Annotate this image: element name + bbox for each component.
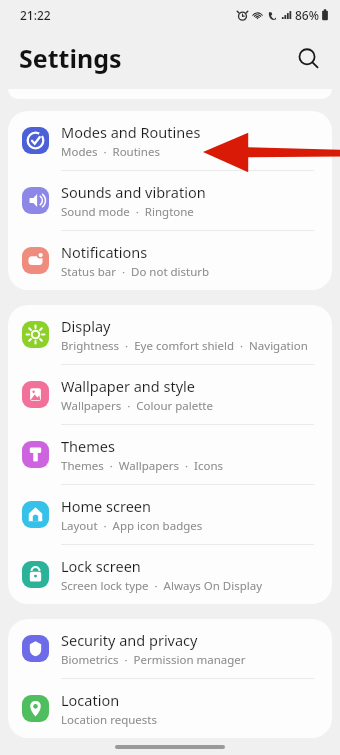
button[interactable]: Modes and Routines	[8, 111, 332, 170]
staticText: Modes · Routines	[61, 144, 160, 160]
button[interactable]: Display	[8, 305, 332, 364]
button[interactable]: Themes	[8, 425, 332, 484]
staticText: Home screen	[61, 496, 151, 516]
button[interactable]: Wallpaper and style	[8, 365, 332, 424]
staticText: Biometrics · Permission manager	[61, 652, 246, 668]
staticText: 21:22	[20, 7, 51, 23]
staticText: 86%	[295, 7, 319, 23]
button[interactable]: Notifications	[8, 231, 332, 290]
button[interactable]: Sounds and vibration	[8, 171, 332, 230]
staticText: Brightness · Eye comfort shield · Naviga…	[61, 338, 322, 354]
staticText: Display	[61, 316, 111, 336]
staticText: Modes and Routines	[61, 122, 201, 142]
button[interactable]: Location	[8, 679, 332, 738]
button[interactable]: Home screen	[8, 485, 332, 544]
staticText: Notifications	[61, 242, 148, 262]
button[interactable]: Search	[288, 38, 328, 78]
staticText: Status bar · Do not disturb	[61, 264, 210, 280]
staticText: Themes · Wallpapers · Icons	[61, 458, 223, 474]
staticText: Settings	[19, 41, 122, 75]
staticText: Screen lock type · Always On Display	[61, 578, 263, 594]
staticText: Security and privacy	[61, 630, 198, 650]
staticText: Sound mode · Ringtone	[61, 204, 194, 220]
staticText: Location	[61, 690, 120, 710]
staticText: Wallpaper and style	[61, 376, 195, 396]
staticText: Wallpapers · Colour palette	[61, 398, 213, 414]
button[interactable]: Lock screen	[8, 545, 332, 604]
staticText: Location requests	[61, 712, 157, 728]
button[interactable]: Security and privacy	[8, 619, 332, 678]
staticText: Sounds and vibration	[61, 182, 206, 202]
staticText: Layout · App icon badges	[61, 518, 203, 534]
staticText: Lock screen	[61, 556, 141, 576]
staticText: Themes	[61, 436, 115, 456]
